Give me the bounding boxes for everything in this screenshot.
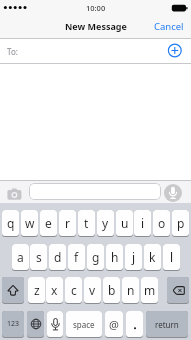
staticText: @ [109, 317, 119, 332]
button[interactable]: 123 [2, 311, 24, 338]
staticText: 10:00 [86, 3, 106, 13]
button[interactable]: f [68, 244, 85, 271]
button[interactable] [126, 311, 143, 338]
button[interactable] [2, 277, 24, 304]
staticText: w [25, 215, 35, 231]
button[interactable]: q [2, 210, 19, 237]
staticText: o [158, 215, 166, 231]
staticText: k [149, 249, 156, 265]
button[interactable]: x [46, 277, 63, 304]
button[interactable]: b [103, 277, 120, 304]
button[interactable]: j [125, 244, 142, 271]
staticText: e [45, 215, 52, 231]
staticText: c [71, 282, 77, 298]
staticText: New Message [65, 20, 127, 32]
button[interactable]: c [65, 277, 82, 304]
button[interactable]: r [59, 210, 76, 237]
staticText: a [17, 249, 24, 265]
button[interactable]: h [106, 244, 123, 271]
staticText: r [65, 215, 70, 231]
button[interactable]: k [144, 244, 161, 271]
staticText: h [111, 249, 119, 265]
button[interactable]: @ [105, 311, 123, 338]
button[interactable]: l [163, 244, 180, 271]
button[interactable]: a [12, 244, 29, 271]
button[interactable]: v [84, 277, 101, 304]
staticText: g [92, 249, 100, 265]
button[interactable]: return [146, 311, 188, 338]
button[interactable]: z [28, 277, 45, 304]
button[interactable]: d [49, 244, 66, 271]
staticText: b [108, 282, 116, 298]
button[interactable]: e [40, 210, 57, 237]
staticText: j [132, 249, 136, 265]
staticText: 123 [7, 319, 20, 329]
button[interactable] [164, 184, 182, 202]
button[interactable]: s [30, 244, 47, 271]
staticText: q [7, 215, 15, 231]
button[interactable]: w [21, 210, 38, 237]
button[interactable]: i [134, 210, 151, 237]
staticText: space [73, 319, 95, 330]
staticText: p [177, 215, 185, 231]
button[interactable] [47, 311, 63, 338]
staticText: z [34, 282, 40, 298]
staticText: To: [7, 46, 18, 57]
button[interactable]: t [78, 210, 95, 237]
staticText: u [121, 215, 129, 231]
button[interactable]: o [153, 210, 170, 237]
staticText: m [144, 282, 156, 298]
staticText: x [51, 282, 58, 298]
staticText: v [89, 282, 96, 298]
button[interactable]: n [122, 277, 139, 304]
staticText: t [84, 215, 89, 231]
staticText: s [36, 249, 42, 265]
staticText: i [141, 215, 145, 231]
button[interactable]: p [172, 210, 189, 237]
button[interactable]: space [66, 311, 102, 338]
button[interactable]: u [116, 210, 133, 237]
button[interactable]: Cancel [148, 18, 191, 34]
button[interactable]: To: [0, 39, 191, 63]
staticText: l [170, 249, 174, 265]
staticText: return [155, 319, 179, 330]
button[interactable] [29, 183, 161, 200]
button[interactable]: g [87, 244, 104, 271]
staticText: y [102, 215, 109, 231]
button[interactable]: y [97, 210, 114, 237]
button[interactable]: m [141, 277, 158, 304]
button[interactable] [27, 311, 44, 338]
staticText: f [74, 249, 79, 265]
staticText: n [127, 282, 135, 298]
button[interactable] [167, 277, 189, 304]
staticText: d [54, 249, 62, 265]
staticText: Cancel [154, 20, 184, 33]
